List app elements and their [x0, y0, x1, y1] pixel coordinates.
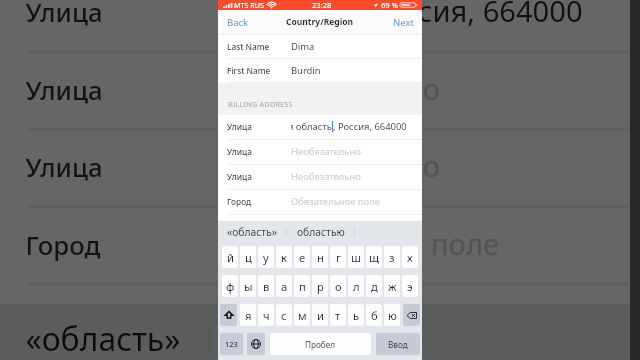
- button[interactable]: й: [222, 246, 238, 268]
- button[interactable]: Улица: [218, 140, 422, 165]
- button[interactable]: л: [348, 275, 364, 297]
- staticText: Last Name: [227, 41, 270, 52]
- staticText: э: [407, 279, 413, 294]
- button[interactable]: в: [258, 275, 274, 297]
- button[interactable]: и: [312, 304, 328, 326]
- button[interactable]: Next: [393, 10, 414, 34]
- button[interactable]: к: [276, 246, 292, 268]
- button[interactable]: н: [312, 246, 328, 268]
- staticText: я область: [291, 120, 332, 133]
- button[interactable]: з: [384, 246, 400, 268]
- staticText: л: [353, 279, 360, 294]
- button[interactable]: Улица: [218, 165, 422, 190]
- button[interactable]: п: [294, 275, 310, 297]
- staticText: з: [389, 250, 395, 265]
- staticText: Город: [227, 196, 252, 207]
- button[interactable]: Пробел: [270, 333, 371, 355]
- button[interactable]: д: [366, 275, 382, 297]
- staticText: Улица: [227, 121, 252, 132]
- staticText: г: [336, 250, 341, 265]
- staticText: Необязательно: [224, 69, 441, 109]
- button[interactable]: Город: [218, 190, 422, 215]
- button[interactable]: ю: [384, 304, 400, 326]
- staticText: 23:28: [312, 0, 332, 10]
- button[interactable]: х: [402, 246, 418, 268]
- button[interactable]: Ввод: [376, 333, 420, 355]
- staticText: и: [317, 308, 324, 323]
- button[interactable]: Change keyboard: [247, 333, 265, 355]
- button[interactable]: ш: [348, 246, 364, 268]
- staticText: ц: [245, 250, 252, 265]
- staticText: «область»: [227, 225, 277, 239]
- button[interactable]: ф: [222, 275, 238, 297]
- staticText: Dima: [291, 40, 315, 53]
- button[interactable]: у: [258, 246, 274, 268]
- staticText: с: [281, 308, 287, 323]
- staticText: ж: [388, 279, 397, 294]
- staticText: в: [263, 279, 270, 294]
- staticText: «область»: [25, 317, 180, 360]
- staticText: Back: [227, 16, 249, 29]
- button[interactable]: е: [294, 246, 310, 268]
- button[interactable]: ц: [240, 246, 256, 268]
- staticText: Country/Region: [286, 16, 354, 28]
- staticText: б: [371, 308, 378, 323]
- staticText: х: [407, 250, 413, 265]
- staticText: ч: [263, 308, 270, 323]
- button[interactable]: «область»: [218, 221, 286, 243]
- button[interactable]: Shift: [220, 304, 237, 326]
- staticText: BILLING ADDRESS: [228, 99, 293, 109]
- button[interactable]: о: [330, 275, 346, 297]
- staticText: н: [317, 250, 324, 265]
- staticText: областью: [242, 317, 391, 360]
- staticText: Улица: [25, 72, 103, 106]
- staticText: , Россия, 664000: [333, 120, 407, 133]
- button[interactable]: с: [276, 304, 292, 326]
- staticText: Ввод: [388, 339, 408, 350]
- button[interactable]: ы: [240, 275, 256, 297]
- staticText: Burdin: [291, 64, 321, 77]
- button[interactable]: Улица: [0, 131, 630, 208]
- staticText: Город: [25, 227, 103, 261]
- button[interactable]: Backspace: [403, 304, 420, 326]
- button[interactable]: Улица: [0, 53, 630, 131]
- button[interactable]: Улица: [0, 0, 630, 53]
- button[interactable]: ж: [384, 275, 400, 297]
- button[interactable]: Back: [227, 10, 249, 34]
- button[interactable]: ч: [258, 304, 274, 326]
- button[interactable]: областью: [211, 304, 419, 360]
- button[interactable]: г: [330, 246, 346, 268]
- button[interactable]: областью: [287, 221, 354, 243]
- button[interactable]: щ: [366, 246, 382, 268]
- staticText: к: [281, 250, 287, 265]
- button[interactable]: а: [276, 275, 292, 297]
- button[interactable]: 123: [220, 333, 243, 355]
- staticText: Необязательно: [291, 145, 361, 158]
- staticText: у: [263, 250, 269, 265]
- staticText: ы: [244, 279, 253, 294]
- button[interactable]: Город: [0, 208, 630, 286]
- staticText: е: [299, 250, 306, 265]
- button[interactable]: б: [366, 304, 382, 326]
- staticText: Улица: [25, 149, 103, 183]
- button[interactable]: я: [240, 304, 256, 326]
- staticText: Улица: [25, 0, 103, 28]
- button[interactable]: м: [294, 304, 310, 326]
- staticText: First Name: [227, 65, 271, 76]
- staticText: Улица: [227, 171, 252, 182]
- staticText: 123: [225, 339, 238, 349]
- button[interactable]: э: [402, 275, 418, 297]
- button[interactable]: First Name: [218, 59, 422, 83]
- button[interactable]: Улица: [218, 115, 422, 140]
- staticText: д: [371, 279, 378, 294]
- button[interactable]: Last Name: [218, 35, 422, 59]
- button[interactable]: т: [330, 304, 346, 326]
- staticText: я область: [224, 0, 351, 31]
- staticText: MTS RUS: [234, 0, 265, 10]
- staticText: , Россия, 664000: [354, 0, 583, 31]
- button[interactable]: «область»: [0, 304, 208, 360]
- button[interactable]: ь: [348, 304, 364, 326]
- button[interactable]: р: [312, 275, 328, 297]
